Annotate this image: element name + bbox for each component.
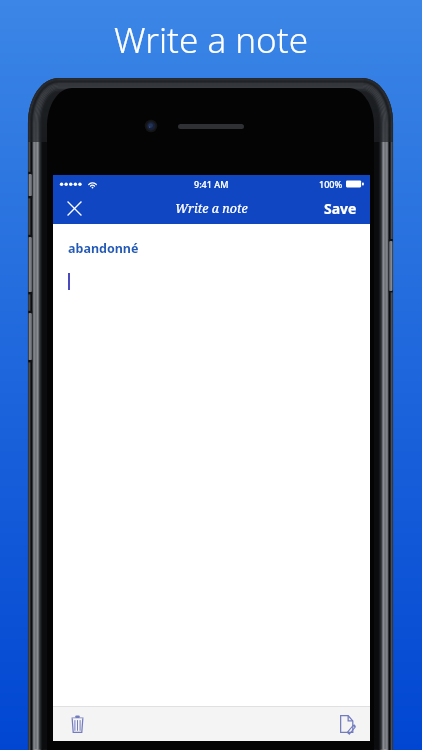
staticText: Save — [324, 199, 357, 217]
button[interactable]: New note — [335, 711, 361, 737]
staticText: 100% — [319, 178, 343, 190]
staticText: 9:41 AM — [194, 178, 229, 190]
button[interactable]: Close — [59, 192, 89, 224]
button[interactable]: Delete — [64, 711, 90, 737]
staticText: abandonné — [68, 240, 139, 257]
staticText: Write a note — [0, 16, 422, 64]
button[interactable]: Save — [311, 192, 370, 224]
staticText: Write a note — [175, 200, 248, 217]
